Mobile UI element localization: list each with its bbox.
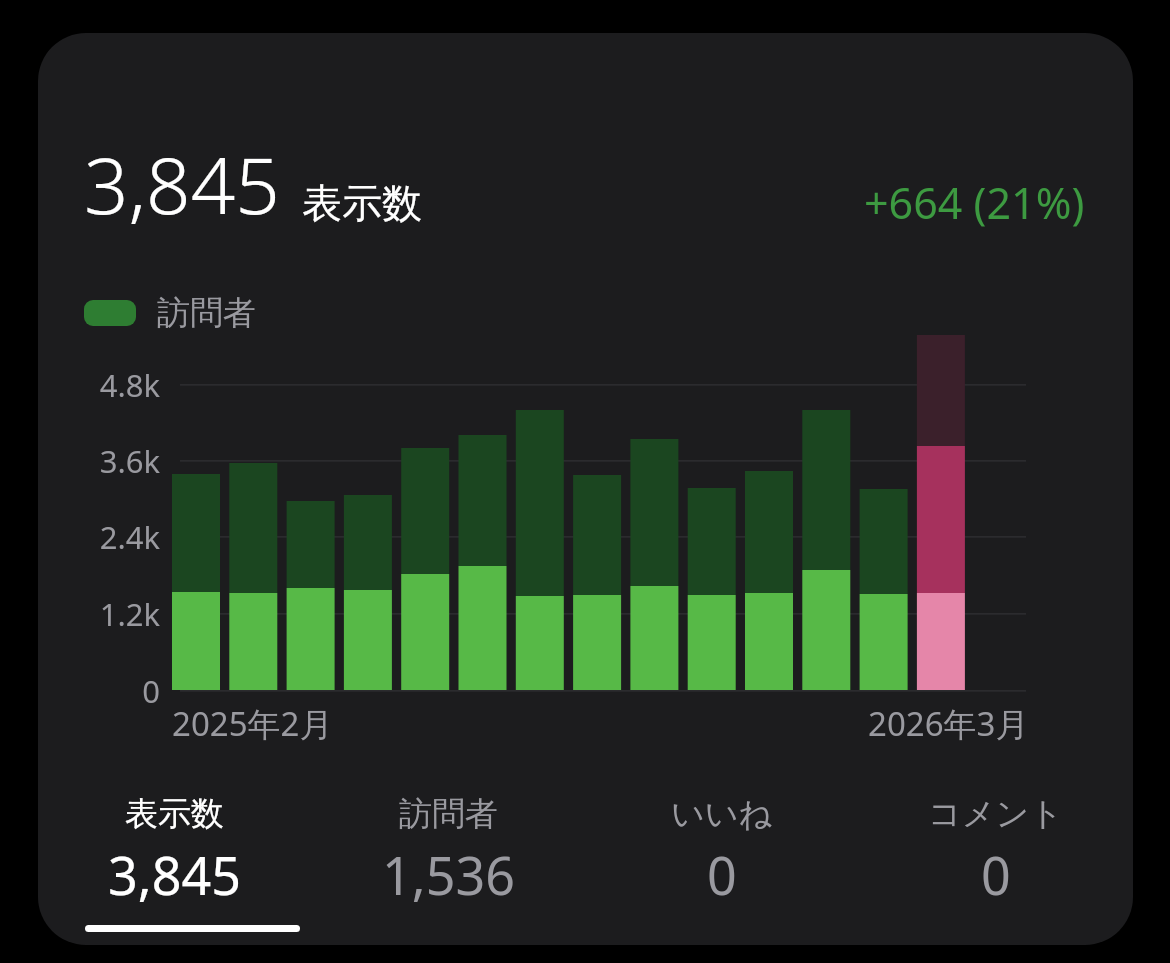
staticText: 0 — [707, 839, 737, 910]
staticText: +664 (21%) — [864, 173, 1085, 232]
button[interactable]: 表示数 — [38, 793, 311, 910]
button[interactable]: いいね — [585, 793, 859, 910]
staticText: いいね — [671, 793, 773, 835]
staticText: 訪問者 — [399, 793, 498, 835]
staticText: 表示数 — [125, 793, 224, 835]
button[interactable]: 訪問者 — [84, 286, 256, 340]
staticText: 1.2k — [38, 593, 160, 635]
staticText: 3,845 — [108, 839, 241, 910]
staticText: 1,536 — [382, 839, 515, 910]
staticText: 2.4k — [38, 516, 160, 558]
staticText: 2026年3月 — [868, 701, 1029, 746]
staticText: 3.6k — [38, 440, 160, 482]
button[interactable]: コメント — [859, 793, 1133, 910]
staticText: 表示数 — [302, 178, 422, 228]
button[interactable]: 3,845 — [38, 33, 1133, 945]
staticText: 0 — [38, 670, 160, 712]
staticText: 訪問者 — [157, 292, 256, 334]
staticText: コメント — [928, 793, 1064, 835]
staticText: 0 — [981, 839, 1011, 910]
staticText: 4.8k — [38, 364, 160, 406]
staticText: 2025年2月 — [172, 701, 333, 746]
button[interactable]: 訪問者 — [311, 793, 585, 910]
staticText: 3,845 — [84, 131, 280, 237]
